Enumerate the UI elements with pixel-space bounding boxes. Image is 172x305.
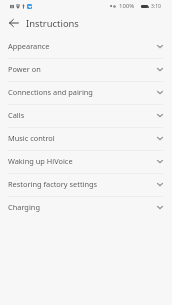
button[interactable]: Charging (0, 197, 172, 220)
staticText: Power on (8, 64, 41, 74)
button[interactable]: Power on (0, 59, 172, 82)
staticText: 3:10 (151, 3, 161, 10)
button[interactable]: Calls (0, 105, 172, 128)
staticText: Calls (8, 110, 25, 120)
staticText: 100% (119, 2, 135, 10)
button[interactable]: Restoring factory settings (0, 174, 172, 197)
button[interactable]: Appearance (0, 36, 172, 59)
button[interactable]: Waking up HiVoice (0, 151, 172, 174)
staticText: Connections and pairing (8, 87, 93, 97)
staticText: Music control (8, 133, 55, 143)
button[interactable]: Back (2, 12, 26, 34)
staticText: Charging (8, 202, 40, 212)
staticText: Appearance (8, 41, 50, 51)
staticText: Waking up HiVoice (8, 156, 73, 166)
staticText: Instructions (26, 17, 79, 30)
button[interactable]: Connections and pairing (0, 82, 172, 105)
staticText: Restoring factory settings (8, 179, 98, 189)
button[interactable]: Music control (0, 128, 172, 151)
